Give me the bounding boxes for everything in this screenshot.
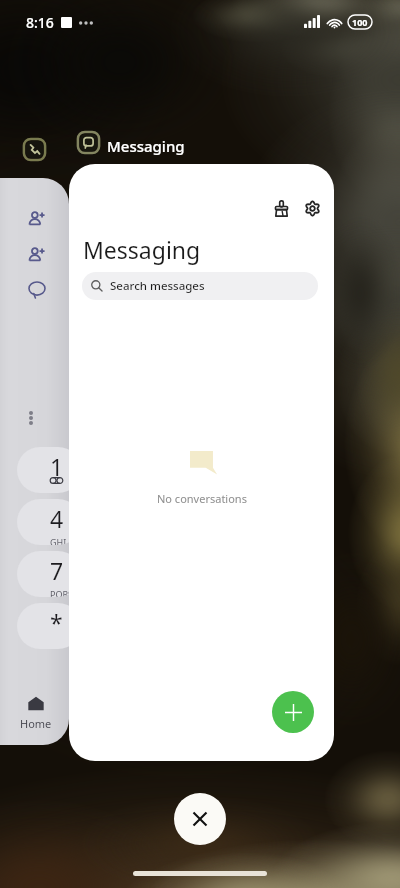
staticText: * bbox=[50, 607, 63, 638]
staticText: 1 bbox=[50, 451, 64, 482]
button[interactable]: Phone bbox=[23, 138, 46, 161]
staticText: No conversations bbox=[157, 491, 247, 506]
button[interactable]: Settings bbox=[295, 191, 329, 225]
staticText: Messaging bbox=[107, 136, 185, 156]
button[interactable]: Clean up bbox=[69, 164, 334, 761]
button[interactable]: Messaging app icon bbox=[77, 131, 100, 154]
staticText: Messaging bbox=[83, 234, 201, 265]
staticText: GHI bbox=[50, 536, 67, 545]
button[interactable]: 4 bbox=[17, 499, 69, 545]
staticText: Search messages bbox=[110, 278, 205, 294]
button[interactable]: Close bbox=[174, 793, 226, 845]
staticText: 8:16 bbox=[26, 13, 54, 32]
staticText: 7 bbox=[50, 555, 64, 586]
button[interactable]: 1 bbox=[0, 178, 69, 745]
staticText: 100 bbox=[352, 16, 368, 28]
button[interactable]: Clean up bbox=[264, 191, 298, 225]
staticText: PQRS bbox=[50, 588, 69, 597]
button[interactable]: New conversation bbox=[272, 691, 314, 733]
button[interactable]: 7 bbox=[17, 551, 69, 597]
button[interactable]: * bbox=[17, 603, 69, 649]
button[interactable]: Search messages bbox=[82, 272, 318, 300]
staticText: Home bbox=[20, 716, 52, 731]
staticText: 4 bbox=[50, 503, 64, 534]
button[interactable]: 1 bbox=[17, 447, 69, 493]
